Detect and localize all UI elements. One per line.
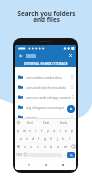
staticText: r — [35, 128, 37, 133]
staticText: d — [32, 136, 35, 141]
staticText: w — [23, 128, 26, 133]
staticText: f — [38, 136, 40, 141]
button[interactable]: b — [48, 142, 55, 150]
button[interactable]: com.sec.android.app.camera — [15, 92, 76, 102]
staticText: Search you folders and files — [11, 9, 82, 24]
button[interactable]: com.android.chrome.data — [15, 82, 76, 92]
staticText: y — [47, 128, 49, 133]
staticText: a — [20, 136, 23, 141]
staticText: h — [50, 136, 53, 141]
staticText: m — [64, 144, 68, 149]
staticText: q — [17, 128, 20, 133]
staticText: j — [57, 136, 58, 141]
staticText: z — [24, 144, 26, 149]
staticText: g — [44, 136, 47, 141]
staticText: feel — [27, 121, 33, 125]
button[interactable]: feels — [55, 119, 72, 126]
button[interactable]: f — [36, 134, 42, 142]
button[interactable]: Backspace — [69, 142, 76, 150]
button[interactable]: movies — [15, 112, 76, 122]
staticText: s — [26, 136, 28, 141]
staticText: n — [57, 144, 60, 149]
button[interactable]: Recents — [59, 161, 66, 168]
button[interactable]: . — [62, 150, 67, 159]
button[interactable]: More options — [70, 83, 74, 91]
staticText: com.adobe.reader.docs — [26, 75, 62, 79]
staticText: o — [65, 128, 68, 133]
button[interactable]: Back — [25, 161, 32, 168]
button[interactable]: Add new folder — [67, 105, 75, 113]
button[interactable]: z — [22, 142, 28, 150]
button[interactable]: l — [66, 134, 72, 142]
staticText: k — [62, 136, 64, 141]
staticText: x — [30, 144, 32, 149]
button[interactable]: q — [16, 126, 21, 134]
button[interactable]: ?123 — [16, 150, 23, 159]
button[interactable]: s — [24, 134, 30, 142]
staticText: org.telegram.messenger — [26, 105, 65, 109]
staticText: i — [60, 128, 61, 133]
button[interactable]: x — [28, 142, 34, 150]
button[interactable]: More options — [70, 113, 74, 121]
button[interactable]: org.telegram.messenger — [15, 102, 76, 112]
button[interactable]: i — [57, 126, 63, 134]
button[interactable]: j — [54, 134, 60, 142]
staticText: com.sec.android.app.camera — [26, 95, 71, 99]
button[interactable]: Shift — [15, 142, 22, 150]
staticText: c — [37, 144, 39, 149]
button[interactable]: Emoji — [23, 150, 28, 159]
button[interactable]: p — [69, 126, 75, 134]
staticText: movies — [26, 115, 37, 119]
staticText: b — [50, 144, 53, 149]
button[interactable]: v — [41, 142, 48, 150]
button[interactable]: More options — [71, 93, 74, 101]
staticText: Feel — [43, 121, 50, 125]
staticText: p — [71, 128, 74, 133]
button[interactable]: d — [30, 134, 36, 142]
button[interactable]: w — [21, 126, 27, 134]
button[interactable]: feel — [22, 119, 38, 126]
staticText: u — [53, 128, 56, 133]
staticText: feels — [60, 121, 68, 125]
staticText: . — [64, 152, 65, 157]
button[interactable]: com.adobe.reader.docs — [15, 72, 76, 82]
button[interactable]: More options — [70, 103, 74, 111]
button[interactable]: o — [63, 126, 69, 134]
staticText: e — [29, 128, 32, 133]
button[interactable]: m — [62, 142, 69, 150]
button[interactable]: h — [48, 134, 54, 142]
button[interactable]: t — [39, 126, 45, 134]
staticText: t — [41, 128, 43, 133]
button[interactable]: a — [19, 134, 24, 142]
button[interactable]: n — [55, 142, 62, 150]
button[interactable]: k — [60, 134, 66, 142]
button[interactable]: y — [45, 126, 51, 134]
button[interactable]: u — [51, 126, 57, 134]
staticText: l — [69, 136, 70, 141]
button[interactable]: g — [42, 134, 48, 142]
button[interactable]: Back — [17, 52, 24, 59]
button[interactable]: c — [34, 142, 41, 150]
button[interactable]: r — [33, 126, 39, 134]
staticText: com.android.chrome.data — [26, 85, 67, 89]
staticText: ?123 — [16, 153, 23, 157]
button[interactable]: Home — [42, 161, 49, 168]
button[interactable]: Search — [67, 152, 75, 158]
button[interactable]: Clear search — [67, 52, 74, 59]
button[interactable]: Feel — [38, 119, 55, 126]
staticText: INTERNAL SHARED STORAGE — [24, 62, 68, 66]
staticText: v — [44, 144, 46, 149]
button[interactable]: e — [27, 126, 33, 134]
button[interactable]: More options — [70, 73, 74, 81]
